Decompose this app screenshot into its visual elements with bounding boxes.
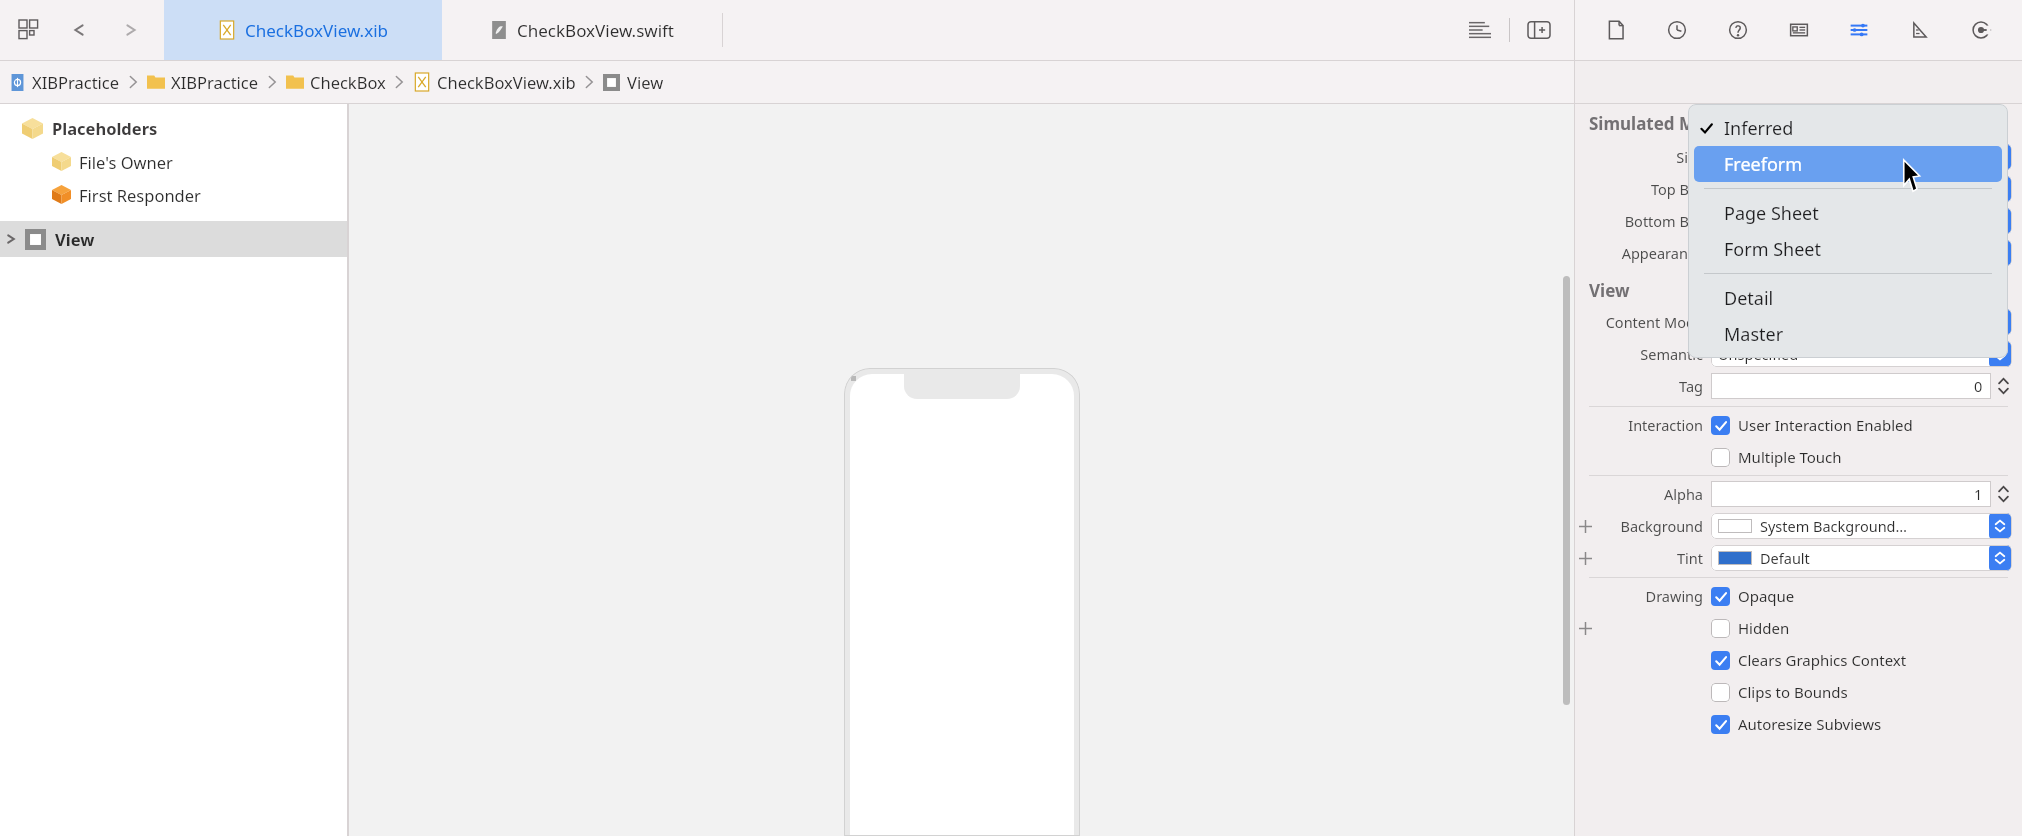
staticText: CheckBoxView.swift bbox=[517, 19, 675, 42]
staticText: Background bbox=[1595, 516, 1703, 536]
button[interactable] bbox=[1711, 651, 1730, 670]
button[interactable]: Master bbox=[1688, 316, 2008, 352]
button[interactable]: CheckBoxView.xib bbox=[164, 0, 442, 60]
staticText: View bbox=[627, 71, 664, 93]
button[interactable] bbox=[1711, 448, 1730, 467]
staticText: View bbox=[55, 228, 95, 250]
button[interactable]: Choose bbox=[1989, 144, 2011, 170]
staticText: Unspecified bbox=[1718, 344, 1989, 364]
staticText: Size bbox=[1595, 147, 1703, 167]
button[interactable]: Add editor bbox=[1520, 11, 1558, 49]
button[interactable]: Choose bbox=[1989, 208, 2011, 234]
button[interactable]: File's Owner bbox=[0, 145, 347, 178]
button[interactable]: Inherited bbox=[1711, 240, 2012, 266]
button[interactable]: Inspector 4 bbox=[1839, 10, 1879, 50]
button[interactable]: Autoresize Subviews bbox=[1711, 714, 1882, 734]
staticText: Inferred bbox=[1724, 116, 1794, 141]
staticText: Semantic bbox=[1595, 344, 1703, 364]
staticText: XIBPractice bbox=[171, 71, 259, 93]
staticText: Placeholders bbox=[52, 117, 158, 139]
button[interactable]: Form Sheet bbox=[1688, 231, 2008, 267]
staticText: Clips to Bounds bbox=[1738, 682, 1848, 702]
button[interactable]: Back bbox=[64, 15, 94, 45]
staticText: Opaque bbox=[1738, 586, 1795, 606]
button[interactable]: Inferred bbox=[1711, 144, 2012, 170]
staticText: Alpha bbox=[1595, 484, 1703, 504]
staticText: Form Sheet bbox=[1724, 237, 1821, 262]
button[interactable]: Hidden bbox=[1711, 618, 1790, 638]
button[interactable]: Detail bbox=[1688, 280, 2008, 316]
staticText: CheckBox bbox=[310, 71, 386, 93]
button[interactable]: View bbox=[0, 221, 347, 257]
button[interactable]: Inferred bbox=[1711, 208, 2012, 234]
staticText: System Background… bbox=[1760, 516, 1989, 536]
staticText: Content Mode bbox=[1595, 312, 1703, 332]
button[interactable] bbox=[1711, 587, 1730, 606]
staticText: Tint bbox=[1595, 548, 1703, 568]
button[interactable]: Inspector 2 bbox=[1718, 10, 1758, 50]
button[interactable] bbox=[1711, 416, 1730, 435]
staticText: Freeform bbox=[1724, 152, 1803, 177]
button[interactable]: Freeform bbox=[1694, 146, 2002, 182]
button[interactable]: Page Sheet bbox=[1688, 195, 2008, 231]
button[interactable]: Choose bbox=[1989, 513, 2011, 539]
button[interactable]: Clears Graphics Context bbox=[1711, 650, 1907, 670]
staticText: Default bbox=[1760, 548, 1989, 568]
button[interactable]: Default bbox=[1711, 545, 2012, 571]
staticText: Page Sheet bbox=[1724, 201, 1819, 226]
button[interactable] bbox=[1711, 715, 1730, 734]
staticText: File's Owner bbox=[79, 151, 173, 173]
staticText: XIBPractice bbox=[32, 71, 120, 93]
staticText: Inferred bbox=[1718, 211, 1989, 231]
staticText: Detail bbox=[1724, 286, 1774, 311]
button[interactable]: Unspecified bbox=[1711, 341, 2012, 367]
button[interactable]: First Responder bbox=[0, 178, 347, 211]
other: Stepper bbox=[1995, 481, 2012, 507]
button[interactable]: User Interaction Enabled bbox=[1711, 415, 1913, 435]
button[interactable]: Choose bbox=[1989, 545, 2011, 571]
button[interactable]: Inspector 5 bbox=[1900, 10, 1940, 50]
staticText: Master bbox=[1724, 322, 1784, 347]
staticText: Tag bbox=[1595, 376, 1703, 396]
button[interactable]: Inferred bbox=[1711, 176, 2012, 202]
button[interactable]: Navigator bbox=[12, 13, 46, 47]
button[interactable]: Inspector 3 bbox=[1779, 10, 1819, 50]
staticText: Clears Graphics Context bbox=[1738, 650, 1907, 670]
button[interactable]: 1 bbox=[1711, 481, 1991, 507]
button[interactable]: Multiple Touch bbox=[1711, 447, 1842, 467]
button[interactable]: Choose bbox=[1989, 240, 2011, 266]
button[interactable]: Choose bbox=[1989, 309, 2011, 335]
staticText: Top Bar bbox=[1595, 179, 1703, 199]
button[interactable]: Inferred bbox=[1688, 110, 2008, 146]
button[interactable]: Placeholders bbox=[0, 111, 347, 145]
staticText: Appearance bbox=[1595, 243, 1703, 263]
button[interactable]: Forward bbox=[116, 15, 146, 45]
staticText: Hidden bbox=[1738, 618, 1790, 638]
staticText: Inherited bbox=[1718, 243, 1989, 263]
button[interactable]: CheckBoxView.swift bbox=[442, 0, 722, 60]
button[interactable]: Inspector 0 bbox=[1596, 10, 1636, 50]
button[interactable] bbox=[1711, 619, 1730, 638]
staticText: Bottom Bar bbox=[1595, 211, 1703, 231]
button[interactable]: Choose bbox=[1989, 341, 2011, 367]
staticText: User Interaction Enabled bbox=[1738, 415, 1913, 435]
staticText: Drawing bbox=[1595, 586, 1703, 606]
staticText: Inferred bbox=[1718, 179, 1989, 199]
button[interactable]: Minimap bbox=[1461, 11, 1499, 49]
button[interactable]: Inspector 6 bbox=[1961, 10, 2001, 50]
button[interactable]: Clips to Bounds bbox=[1711, 682, 1848, 702]
staticText: Interaction bbox=[1595, 415, 1703, 435]
button[interactable]: Inspector 1 bbox=[1657, 10, 1697, 50]
staticText: CheckBoxView.xib bbox=[245, 19, 388, 42]
button[interactable]: Choose bbox=[1989, 176, 2011, 202]
button[interactable] bbox=[1711, 683, 1730, 702]
button[interactable]: 0 bbox=[1711, 373, 1991, 399]
button[interactable]: Scale To Fill bbox=[1711, 309, 2012, 335]
button[interactable]: Opaque bbox=[1711, 586, 1795, 606]
button[interactable]: System Background… bbox=[1711, 513, 2012, 539]
